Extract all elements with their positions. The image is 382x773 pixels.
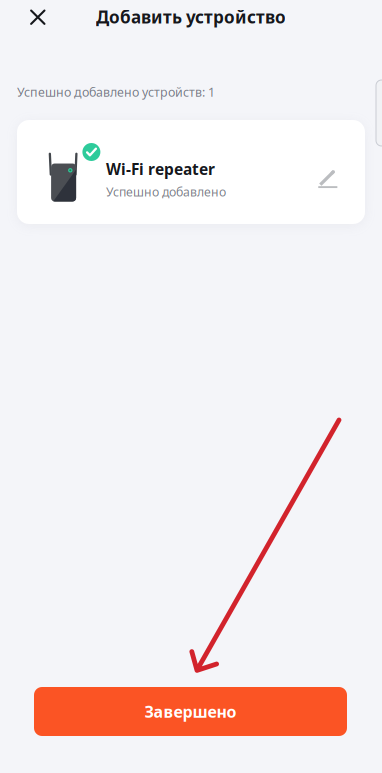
button[interactable]: Wi-Fi repeater: [17, 120, 365, 224]
staticText: Добавить устройство: [96, 5, 286, 29]
button[interactable]: Close: [15, 0, 61, 36]
button[interactable]: Завершено: [34, 687, 347, 736]
staticText: Успешно добавлено устройств: 1: [17, 83, 215, 100]
staticText: Успешно добавлено: [106, 183, 226, 200]
staticText: Wi-Fi repeater: [106, 158, 215, 180]
staticText: Завершено: [144, 701, 236, 722]
